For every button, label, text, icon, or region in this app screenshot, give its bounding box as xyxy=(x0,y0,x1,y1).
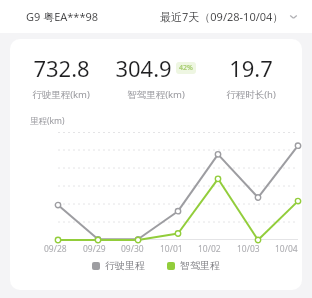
staticText: 10/04 xyxy=(275,243,298,255)
staticText: 732.8 xyxy=(33,53,90,83)
staticText: 09/29 xyxy=(83,243,106,255)
button[interactable]: 行驶里程 xyxy=(90,257,147,274)
button[interactable]: 304.9 xyxy=(108,52,203,102)
staticText: 行驶里程 xyxy=(105,259,145,272)
staticText: 19.7 xyxy=(229,53,273,83)
other: Select date range xyxy=(288,11,299,22)
staticText: 09/30 xyxy=(121,243,144,255)
staticText: 10/01 xyxy=(160,243,183,255)
staticText: 10/03 xyxy=(237,243,260,255)
button[interactable]: G9 粤EA***98 xyxy=(22,6,103,27)
staticText: 最近7天（09/28-10/04） xyxy=(160,9,284,24)
button[interactable]: 最近7天（09/28-10/04） xyxy=(157,6,302,27)
staticText: 42% xyxy=(179,63,193,73)
staticText: 304.9 xyxy=(115,53,172,83)
staticText: 行驶里程(km) xyxy=(32,88,90,101)
staticText: 10/02 xyxy=(198,243,221,255)
staticText: 智驾里程(km) xyxy=(127,88,185,101)
staticText: 09/28 xyxy=(44,243,67,255)
button[interactable]: 智驾里程 xyxy=(165,257,222,274)
staticText: G9 粤EA***98 xyxy=(26,9,99,24)
staticText: 行程时长(h) xyxy=(226,88,276,101)
button[interactable]: 732.8 xyxy=(14,52,108,102)
button[interactable]: 19.7 xyxy=(203,52,298,102)
staticText: 智驾里程 xyxy=(180,259,220,272)
staticText: 里程(km) xyxy=(30,115,65,127)
